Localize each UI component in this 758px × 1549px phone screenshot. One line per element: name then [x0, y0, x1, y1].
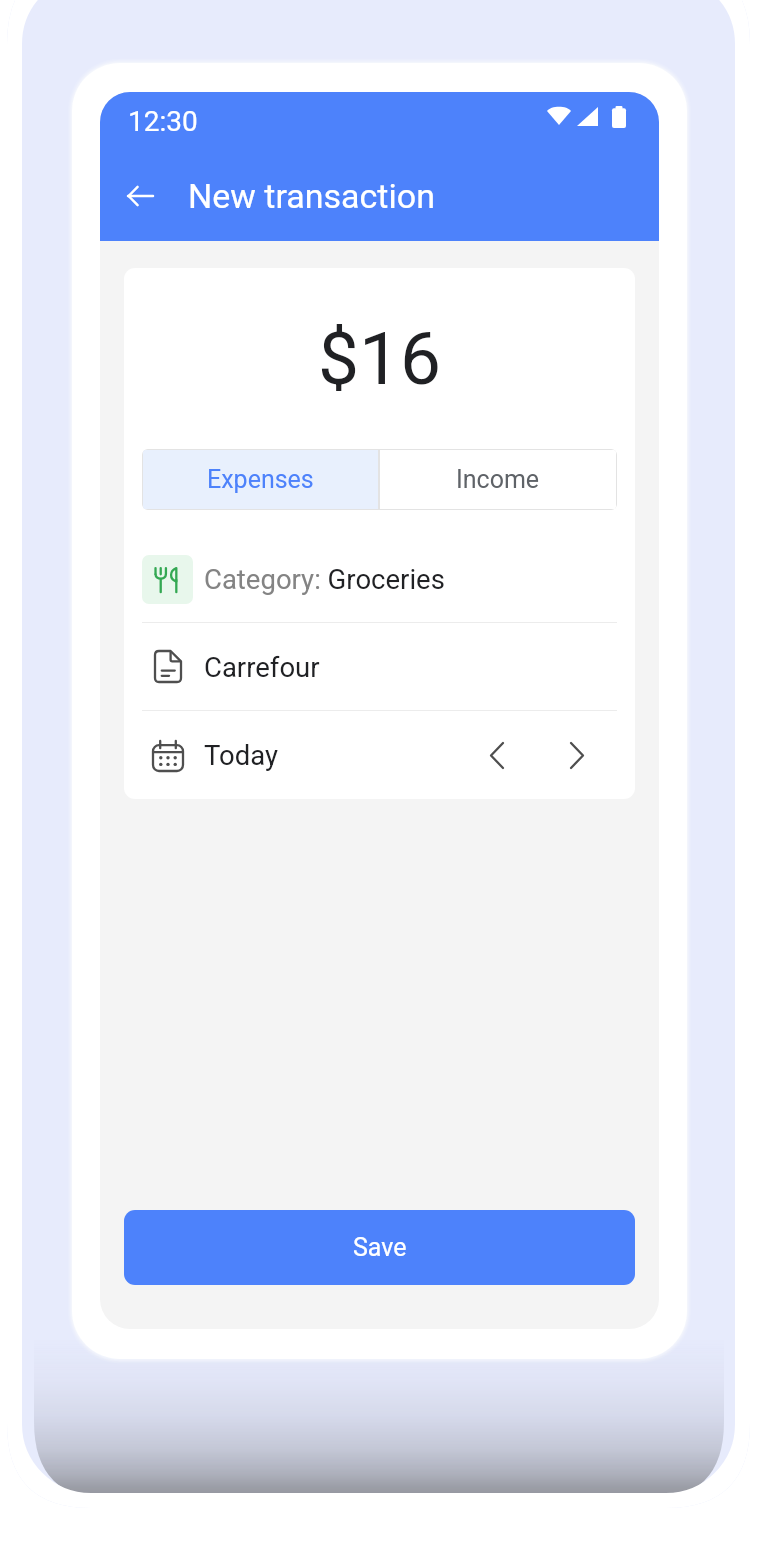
- staticText: New transaction: [188, 176, 435, 216]
- staticText: 12:30: [128, 105, 198, 138]
- staticText: Expenses: [207, 465, 314, 494]
- staticText: Today: [204, 739, 279, 771]
- staticText: Save: [353, 1233, 407, 1262]
- button[interactable]: Income: [380, 450, 616, 509]
- button[interactable]: Previous day: [471, 729, 523, 781]
- staticText: Income: [456, 465, 540, 494]
- button[interactable]: Category: Groceries: [124, 536, 635, 622]
- button[interactable]: Expenses: [143, 450, 378, 509]
- button[interactable]: Next day: [551, 729, 603, 781]
- button[interactable]: Back: [116, 172, 164, 220]
- staticText: Carrefour: [204, 651, 320, 683]
- button[interactable]: Save: [124, 1210, 635, 1285]
- staticText: $16: [124, 316, 635, 402]
- staticText: Category: Groceries: [204, 563, 445, 595]
- button[interactable]: Carrefour: [124, 623, 635, 710]
